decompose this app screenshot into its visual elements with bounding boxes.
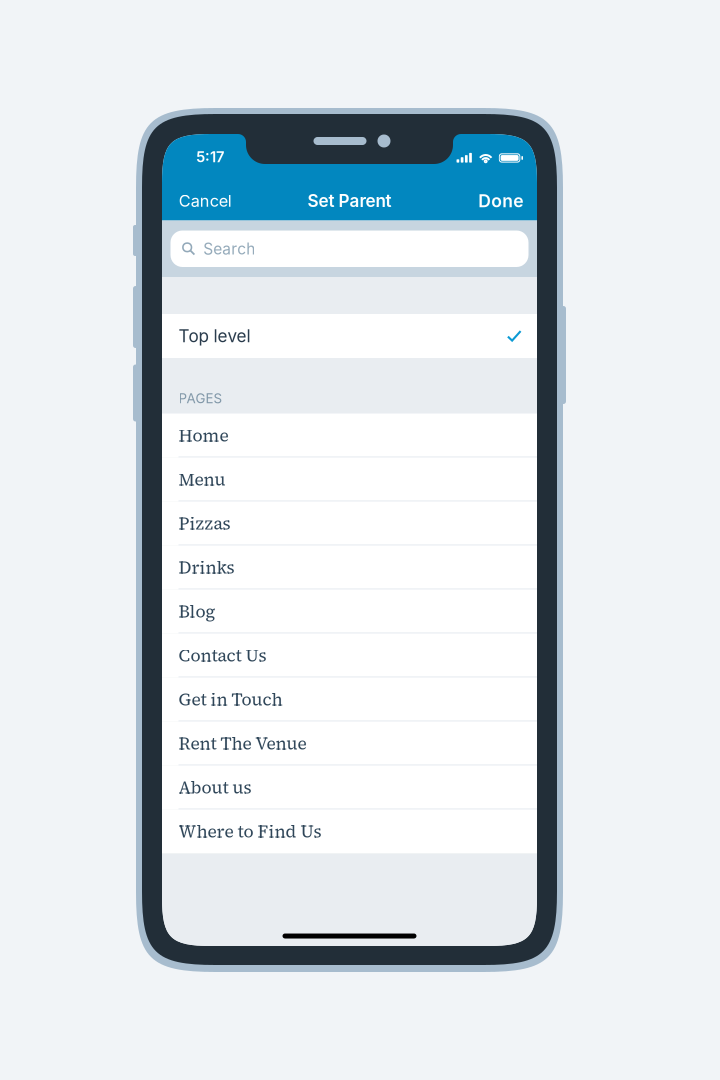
button[interactable]: Home [162, 413, 537, 457]
button[interactable]: Cancel [174, 184, 237, 218]
staticText: Drinks [178, 556, 234, 579]
staticText: Menu [178, 468, 225, 491]
staticText: 5:17 [196, 148, 224, 166]
staticText: Set Parent [307, 190, 391, 211]
button[interactable]: Search [170, 230, 528, 267]
staticText: Contact Us [178, 644, 266, 667]
staticText: About us [178, 776, 251, 799]
staticText: Cancel [179, 191, 232, 211]
button[interactable]: Drinks [162, 545, 537, 589]
button[interactable]: Done [473, 183, 525, 218]
button[interactable]: Blog [162, 589, 537, 633]
button[interactable]: Where to Find Us [162, 809, 537, 853]
staticText: PAGES [178, 390, 222, 406]
staticText: Blog [178, 600, 215, 623]
staticText: Get in Touch [178, 688, 282, 711]
button[interactable]: Get in Touch [162, 677, 537, 721]
button[interactable]: Rent The Venue [162, 721, 537, 765]
staticText: Home [178, 424, 228, 447]
staticText: Search [203, 239, 255, 258]
button[interactable]: Contact Us [162, 633, 537, 677]
staticText: Pizzas [178, 512, 230, 535]
button[interactable]: Top level [162, 314, 537, 358]
staticText: Done [478, 190, 523, 211]
staticText: Where to Find Us [178, 820, 321, 843]
staticText: Rent The Venue [178, 732, 306, 755]
button[interactable]: Pizzas [162, 501, 537, 545]
button[interactable]: About us [162, 765, 537, 809]
staticText: Top level [178, 326, 250, 346]
button[interactable]: Menu [162, 457, 537, 501]
